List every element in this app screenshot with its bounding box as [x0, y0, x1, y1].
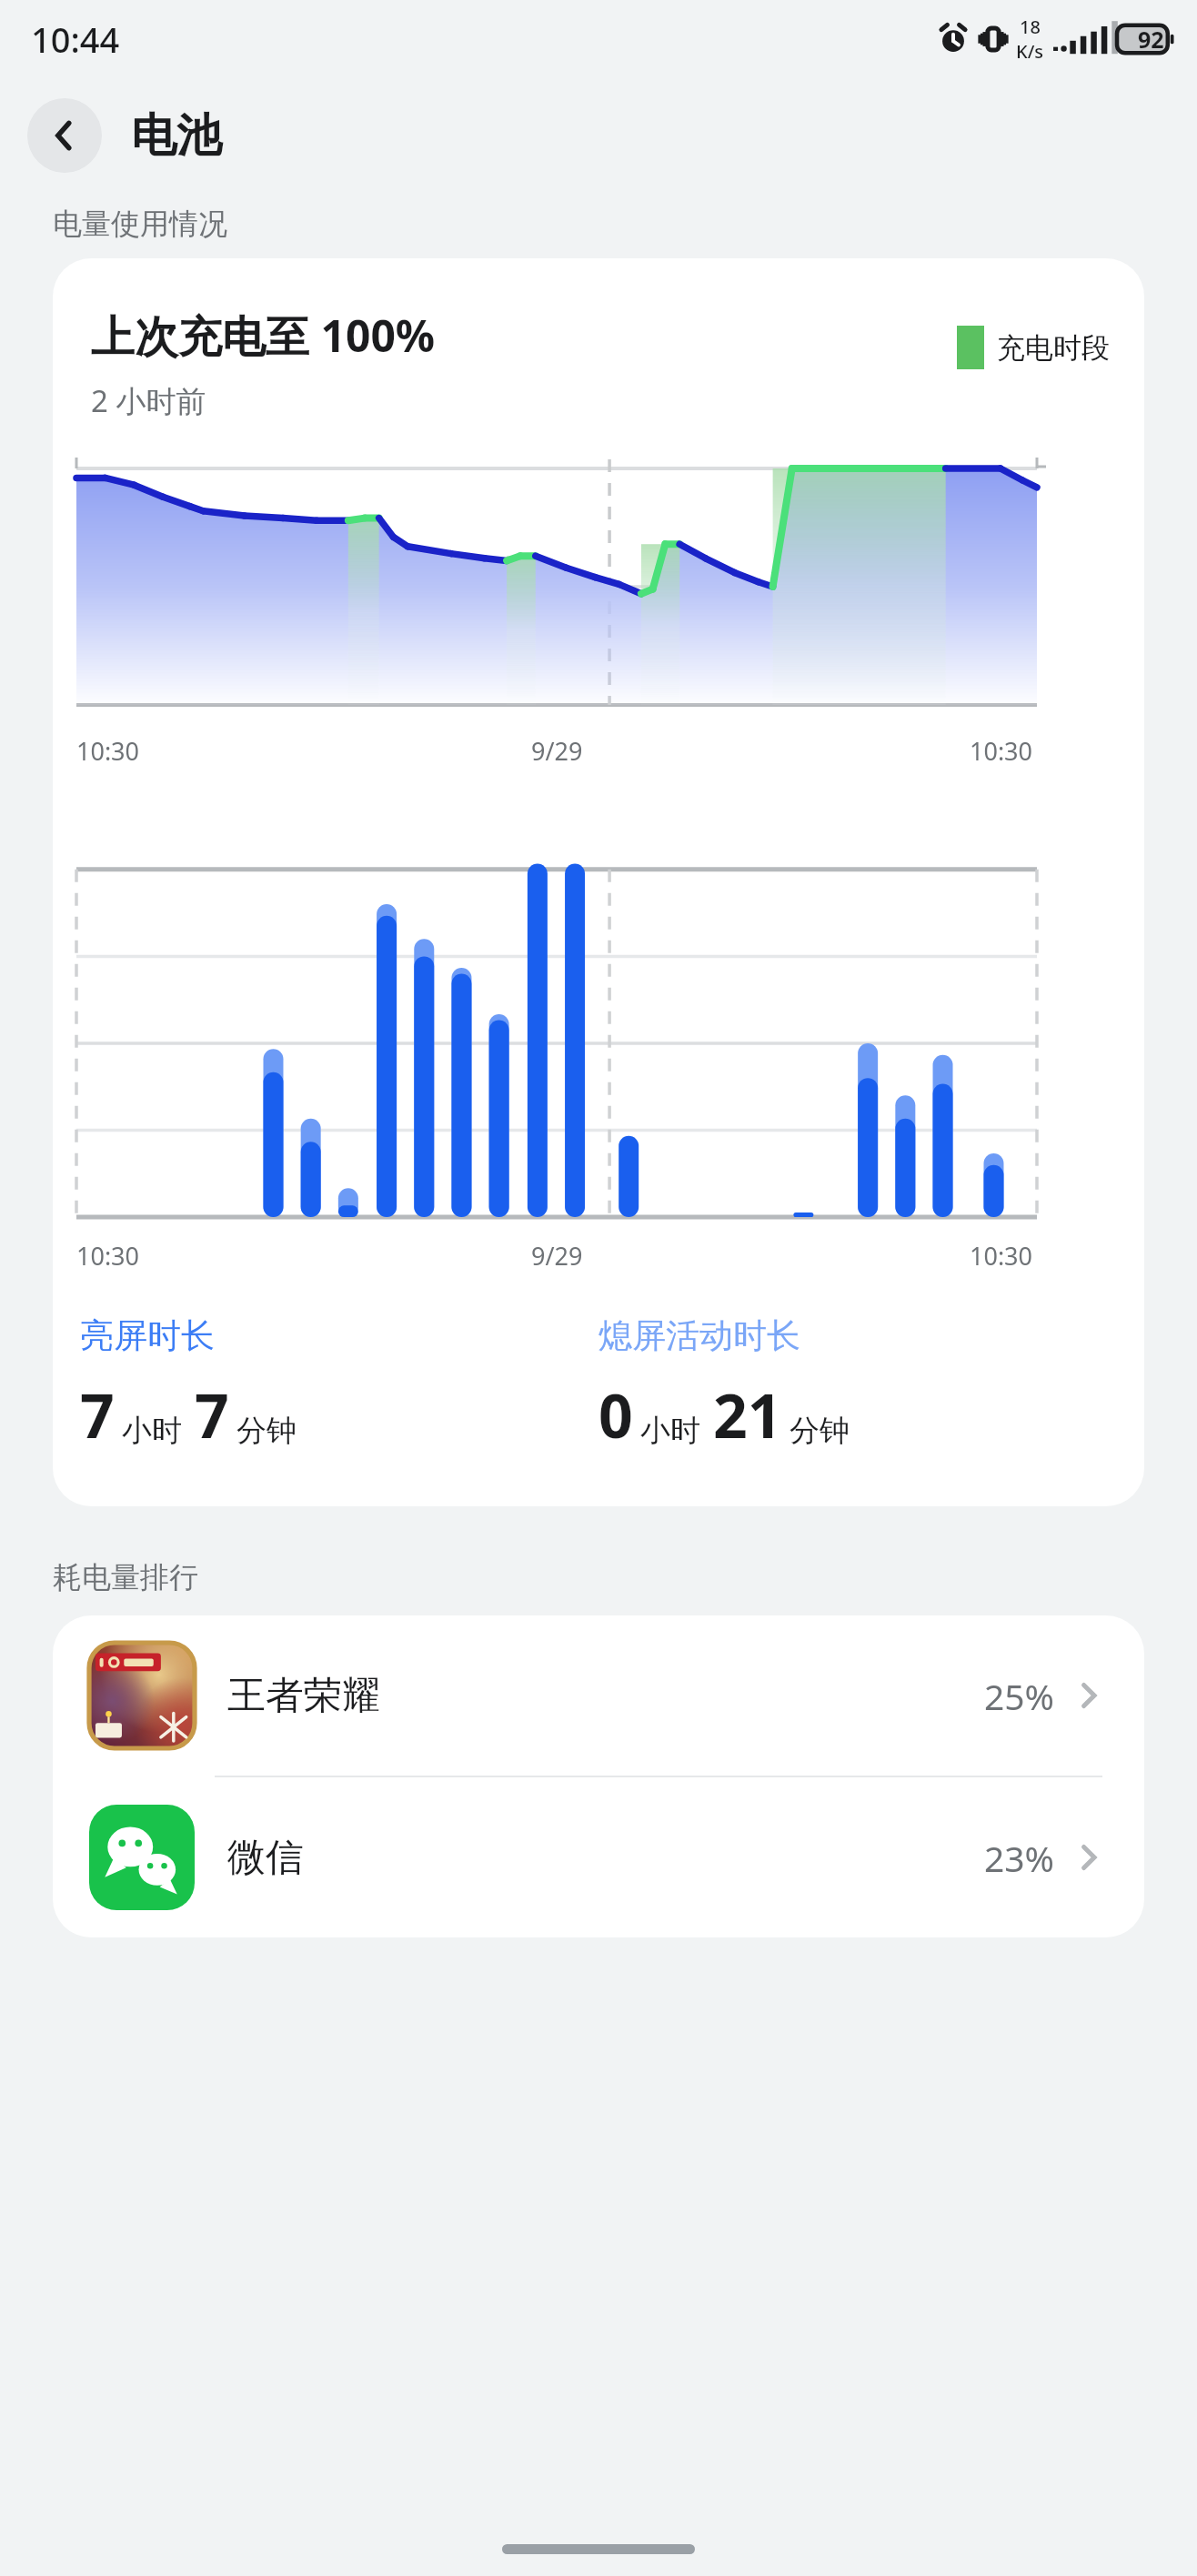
staticText: 25%	[984, 1672, 1055, 1720]
staticText: 18	[1020, 15, 1041, 39]
staticText: 微信	[227, 1834, 984, 1882]
staticText: 熄屏活动时长	[598, 1314, 800, 1357]
button[interactable]: 微信	[53, 1777, 1144, 1937]
button[interactable]: 返回	[27, 98, 102, 173]
button[interactable]: 王者荣耀	[53, 1615, 1144, 1776]
staticText: 上次充电至 100%	[91, 306, 436, 366]
staticText: 23%	[984, 1834, 1055, 1882]
staticText: 小时	[640, 1412, 700, 1450]
staticText: 小时	[122, 1412, 182, 1450]
staticText: 10:30	[76, 734, 140, 768]
staticText: 10:30	[970, 734, 1033, 768]
staticText: 9/29	[531, 734, 583, 768]
staticText: 充电时段	[997, 330, 1110, 366]
staticText: 0	[598, 1374, 633, 1455]
staticText: 9/29	[531, 1239, 583, 1273]
staticText: K/s	[1016, 39, 1044, 64]
staticText: 7	[80, 1374, 115, 1455]
staticText: 亮屏时长	[80, 1314, 215, 1357]
staticText: 电池	[131, 107, 222, 165]
staticText: 分钟	[236, 1412, 297, 1450]
staticText: 10:44	[31, 15, 120, 63]
staticText: 7	[195, 1374, 229, 1455]
staticText: 王者荣耀	[227, 1672, 984, 1720]
staticText: 分钟	[790, 1412, 850, 1450]
staticText: 10:30	[76, 1239, 140, 1273]
staticText: 电量使用情况	[53, 206, 227, 242]
staticText: 耗电量排行	[53, 1559, 198, 1595]
staticText: 92	[1138, 24, 1164, 55]
staticText: 2 小时前	[91, 380, 206, 421]
staticText: 21	[713, 1374, 782, 1455]
staticText: 10:30	[970, 1239, 1033, 1273]
